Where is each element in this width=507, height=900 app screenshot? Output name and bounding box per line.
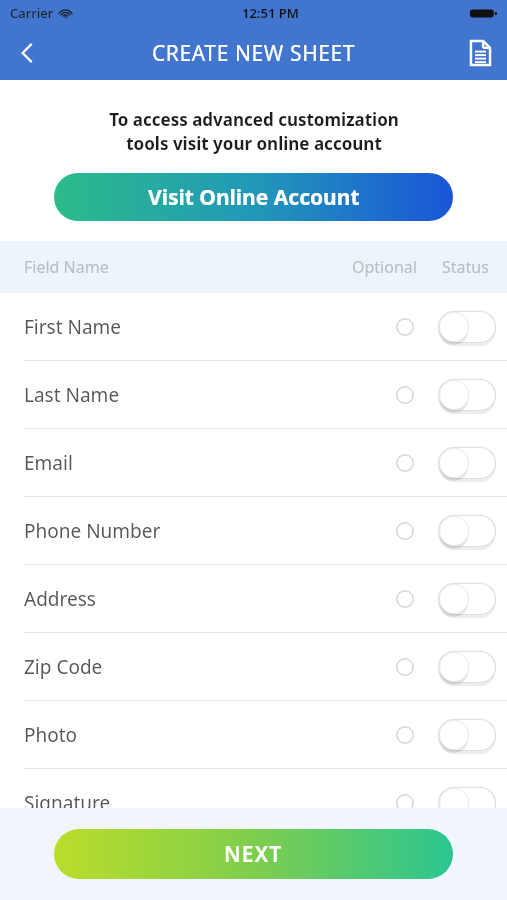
button[interactable]: Sheet [453, 26, 507, 80]
button[interactable]: Visit Online Account [54, 173, 453, 221]
staticText: Signature [24, 790, 111, 816]
staticText: First Name [24, 314, 122, 340]
staticText: CREATE NEW SHEET [152, 39, 356, 68]
button[interactable]: Optional Email [381, 439, 429, 487]
button[interactable]: Optional First Name [381, 303, 429, 351]
button[interactable]: Signature [0, 769, 507, 836]
button[interactable]: Optional Zip Code [381, 643, 429, 691]
button[interactable]: Toggle Address [433, 574, 501, 624]
button[interactable]: Optional Address [381, 575, 429, 623]
staticText: Email [24, 450, 73, 476]
button[interactable]: Zip Code [0, 633, 507, 701]
staticText: NEXT [224, 840, 283, 869]
button[interactable]: Optional Last Name [381, 371, 429, 419]
button[interactable]: NEXT [54, 829, 453, 879]
button[interactable]: Toggle Photo [433, 710, 501, 760]
button[interactable]: Toggle Email [433, 438, 501, 488]
button[interactable]: Back [0, 26, 54, 80]
button[interactable]: Toggle Phone Number [433, 506, 501, 556]
button[interactable]: Optional Signature [381, 779, 429, 827]
button[interactable]: Address [0, 565, 507, 633]
button[interactable]: Toggle First Name [433, 302, 501, 352]
staticText: Optional [352, 256, 417, 278]
staticText: Field Name [24, 256, 109, 278]
staticText: Photo [24, 722, 78, 748]
button[interactable]: First Name [0, 293, 507, 361]
button[interactable]: Photo [0, 701, 507, 769]
button[interactable]: Toggle Last Name [433, 370, 501, 420]
staticText: Last Name [24, 382, 120, 408]
button[interactable]: Phone Number [0, 497, 507, 565]
button[interactable]: Toggle Signature [433, 778, 501, 828]
staticText: To access advanced customization tools v… [109, 108, 399, 155]
button[interactable]: Last Name [0, 361, 507, 429]
button[interactable]: Optional Photo [381, 711, 429, 759]
staticText: Carrier [10, 4, 54, 22]
staticText: Status [442, 256, 489, 278]
staticText: Zip Code [24, 654, 103, 680]
staticText: Address [24, 586, 96, 612]
button[interactable]: Email [0, 429, 507, 497]
button[interactable]: Toggle Zip Code [433, 642, 501, 692]
staticText: 12:51 PM [242, 4, 299, 22]
staticText: Phone Number [24, 518, 161, 544]
button[interactable]: Optional Phone Number [381, 507, 429, 555]
staticText: Visit Online Account [148, 183, 360, 212]
